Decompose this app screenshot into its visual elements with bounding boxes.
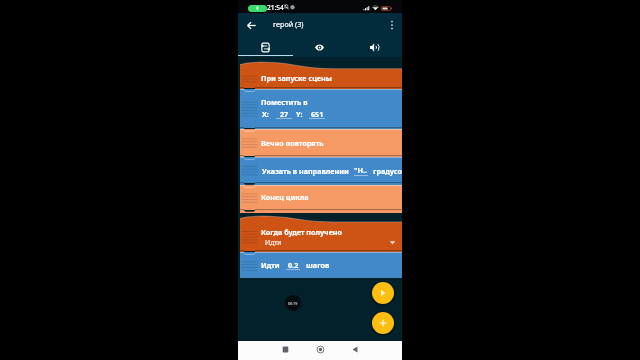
staticText: герой (3) [273,19,304,29]
button[interactable]: Home [306,341,334,360]
staticText: Y: [296,109,303,119]
staticText: Вечно повторять [261,138,324,148]
button[interactable]: Back [341,341,369,360]
staticText: Когда будет получено [261,227,343,237]
staticText: При запуске сцены [261,73,332,83]
button[interactable]: Вечно повторять [240,129,402,156]
button[interactable]: Looks [292,40,347,57]
staticText: Идти [261,260,280,270]
button[interactable]: Back [241,15,261,35]
staticText: Идти [265,238,282,247]
staticText: Конец цикла [261,192,309,202]
button[interactable]: Add [372,312,394,334]
button[interactable]: Идти 0.2 шагов [240,252,402,279]
staticText: Поместить в [261,97,308,107]
staticText: 00:19 [288,301,298,306]
button[interactable]: More options [382,15,402,35]
button[interactable]: При запуске сцены [240,62,402,88]
staticText: 651 [311,109,324,119]
button[interactable]: Конец цикла [240,185,402,210]
staticText: 27 [280,109,289,119]
staticText: "Н... [354,165,368,176]
staticText: 21:54 [267,3,284,12]
button[interactable]: Run [372,282,394,304]
staticText: X: [262,109,269,119]
button[interactable]: Scripts [238,40,292,57]
button[interactable]: Поместить в [240,89,402,128]
button[interactable]: Когда будет получено [240,216,402,251]
staticText: Указать в направлении [262,166,349,176]
staticText: шагов [306,260,330,270]
staticText: градусов [373,166,402,176]
staticText: 0.2 [288,260,299,270]
button[interactable]: Указать в направлении [240,157,402,183]
button[interactable]: Recent apps [271,341,299,360]
button[interactable]: Sounds [347,40,402,57]
